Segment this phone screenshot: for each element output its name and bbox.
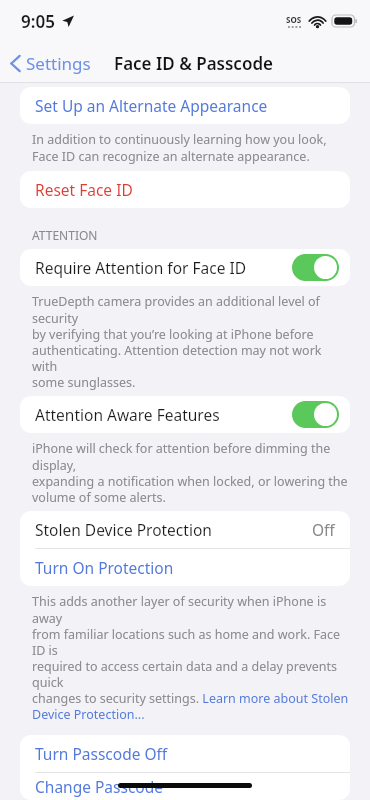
- staticText: In addition to continuously learning how…: [32, 131, 327, 164]
- button[interactable]: Turn Passcode Off: [20, 735, 350, 772]
- staticText: Off: [312, 519, 335, 540]
- staticText: SOS: [286, 14, 302, 25]
- staticText: Reset Face ID: [35, 179, 133, 200]
- staticText: iPhone will check for attention before d…: [32, 440, 350, 505]
- staticText: Attention Aware Features: [35, 404, 220, 425]
- button[interactable]: Turn On Protection: [20, 549, 350, 586]
- staticText: Turn On Protection: [35, 557, 174, 578]
- staticText: Change Passcode: [35, 776, 163, 797]
- staticText: Turn Passcode Off: [35, 743, 168, 764]
- staticText: This adds another layer of security when…: [32, 593, 354, 722]
- staticText: Require Attention for Face ID: [35, 257, 247, 278]
- staticText: Face ID & Passcode: [114, 52, 273, 75]
- staticText: TrueDepth camera provides an additional …: [32, 293, 350, 390]
- staticText: Stolen Device Protection: [35, 519, 212, 540]
- button[interactable]: Toggle, on: [292, 401, 339, 428]
- button[interactable]: Change Passcode: [20, 773, 350, 800]
- staticText: 9:05: [21, 10, 55, 33]
- button[interactable]: Settings: [0, 47, 99, 80]
- staticText: Settings: [26, 52, 91, 75]
- button[interactable]: Attention Aware Features: [20, 396, 350, 433]
- staticText: Set Up an Alternate Appearance: [35, 95, 268, 116]
- staticText: ATTENTION: [32, 227, 98, 243]
- button[interactable]: Toggle, on: [292, 254, 339, 281]
- button[interactable]: Require Attention for Face ID: [20, 249, 350, 286]
- button[interactable]: Set Up an Alternate Appearance: [20, 87, 350, 124]
- button[interactable]: Stolen Device Protection: [20, 511, 350, 548]
- button[interactable]: Reset Face ID: [20, 171, 350, 208]
